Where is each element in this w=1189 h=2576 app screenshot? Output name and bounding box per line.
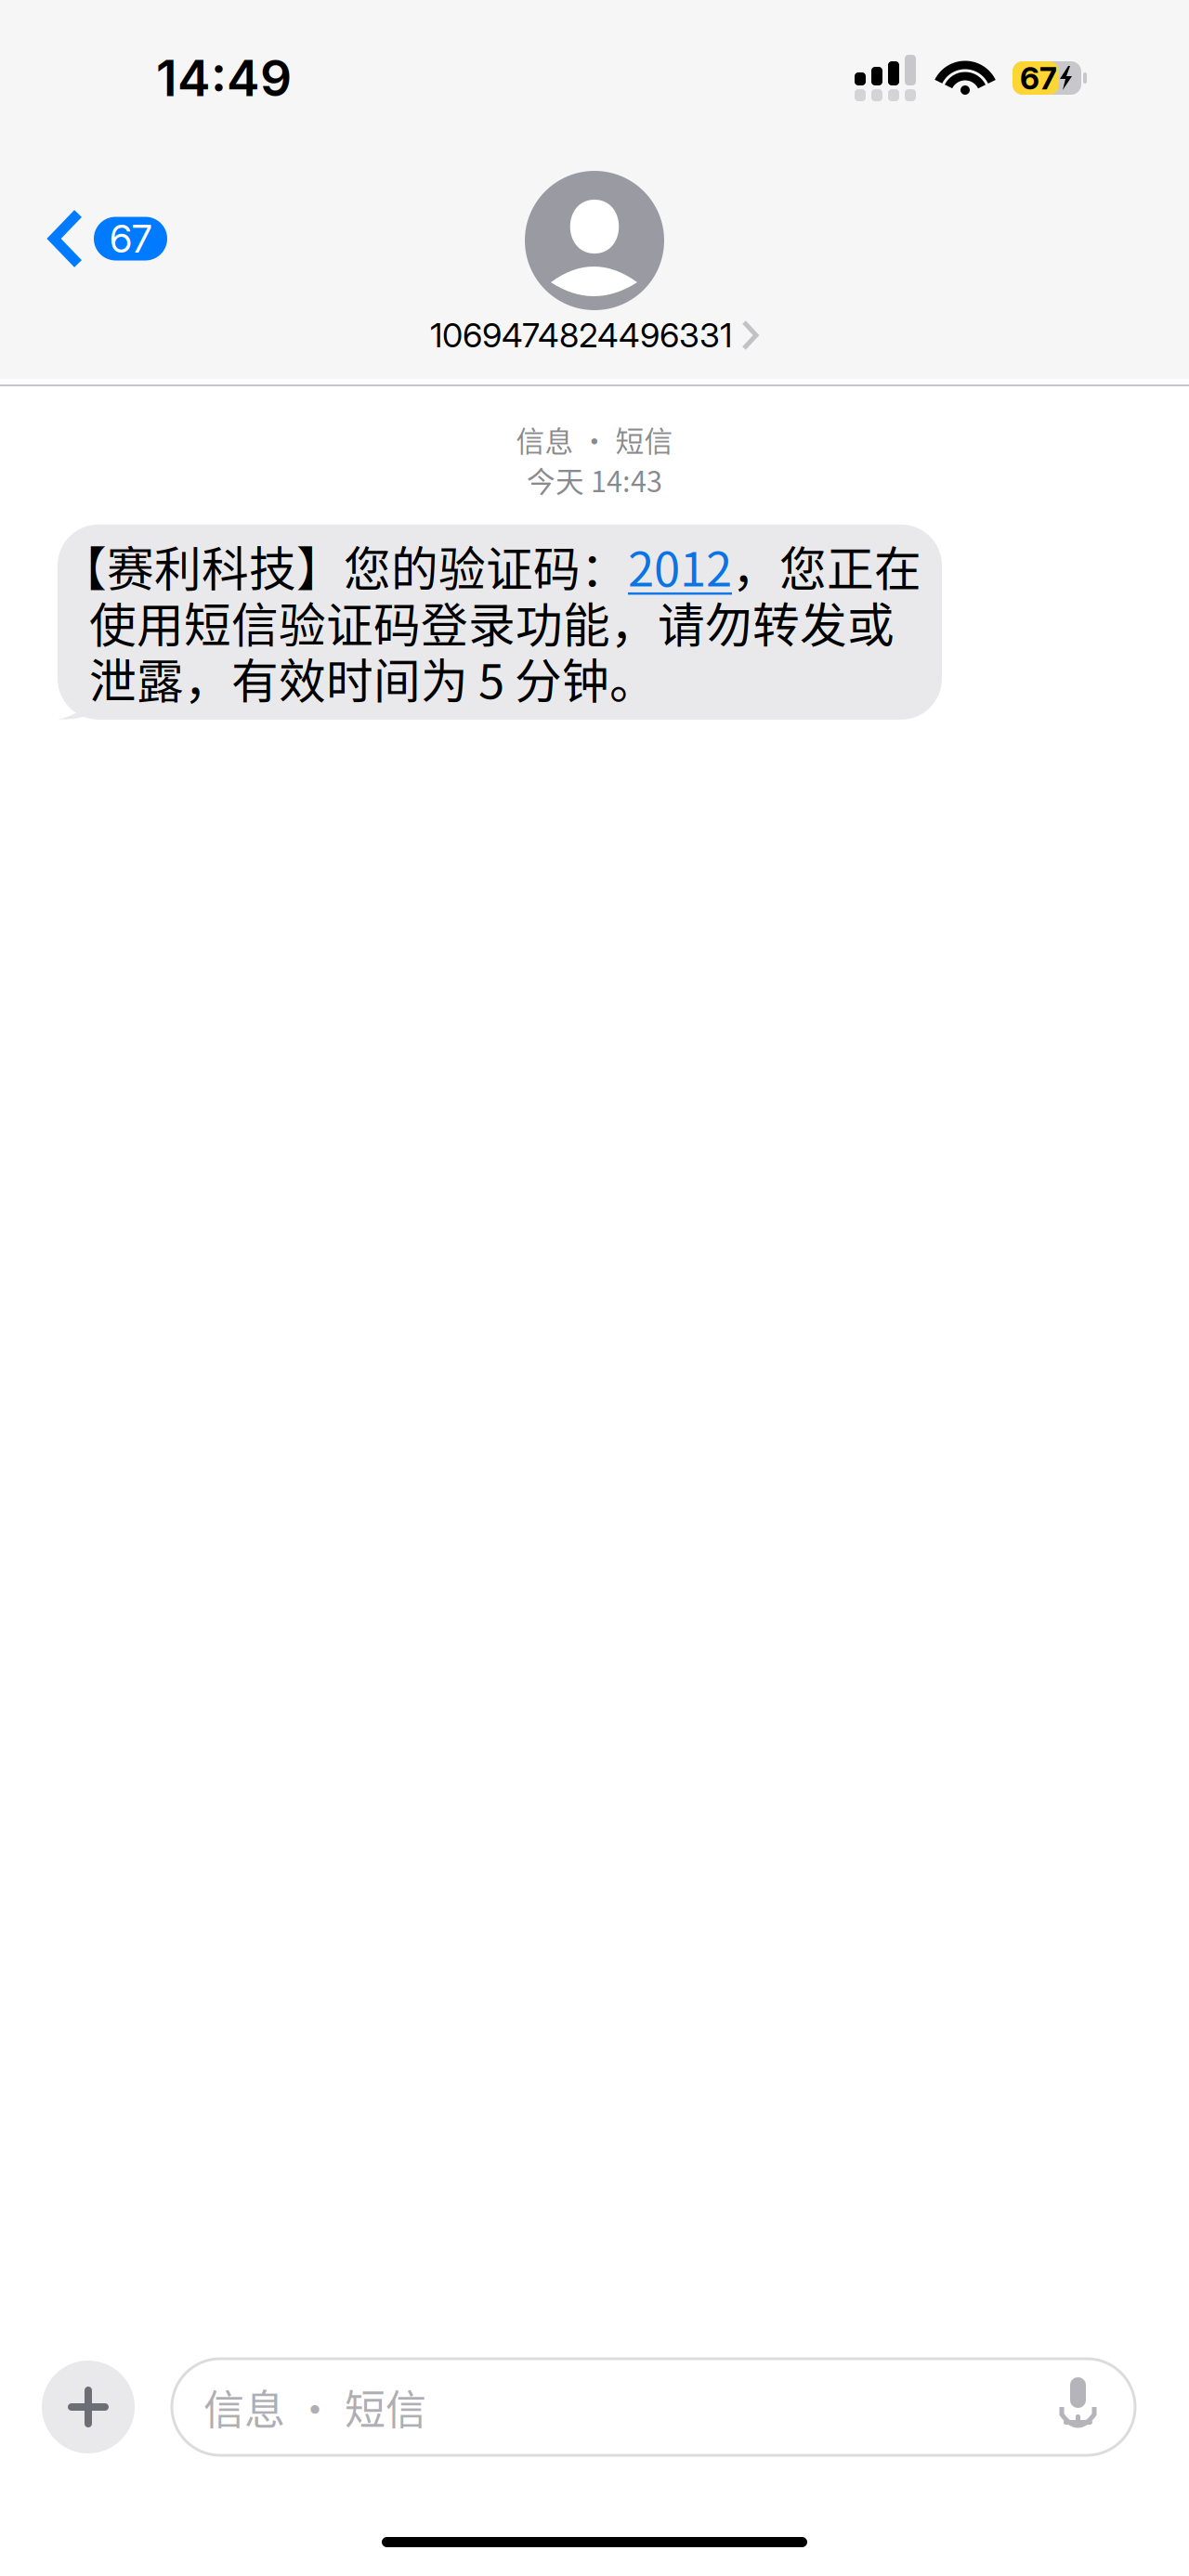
staticText: ，您正在: [732, 532, 921, 600]
button[interactable]: Back to 67 conversations: [0, 188, 193, 290]
staticText: 使用短信验证码登录功能，请勿转发或: [89, 588, 895, 656]
button[interactable]: 1069474824496331: [430, 171, 759, 355]
button[interactable]: 信息 · 短信: [172, 2359, 1135, 2455]
staticText: 信息 · 短信: [203, 2377, 426, 2437]
staticText: 泄露，有效时间为 5 分钟。: [89, 644, 657, 712]
button[interactable]: Add attachment: [0, 2361, 172, 2453]
staticText: 2012: [628, 532, 732, 600]
staticText: 【赛利科技】您的验证码：: [59, 532, 628, 600]
staticText: 今天 14:43: [527, 459, 662, 500]
staticText: 14:49: [156, 48, 292, 108]
staticText: 信息 · 短信: [516, 419, 673, 460]
staticText: 67: [1020, 59, 1057, 97]
staticText: 1069474824496331: [430, 315, 732, 355]
staticText: 67: [110, 215, 151, 262]
